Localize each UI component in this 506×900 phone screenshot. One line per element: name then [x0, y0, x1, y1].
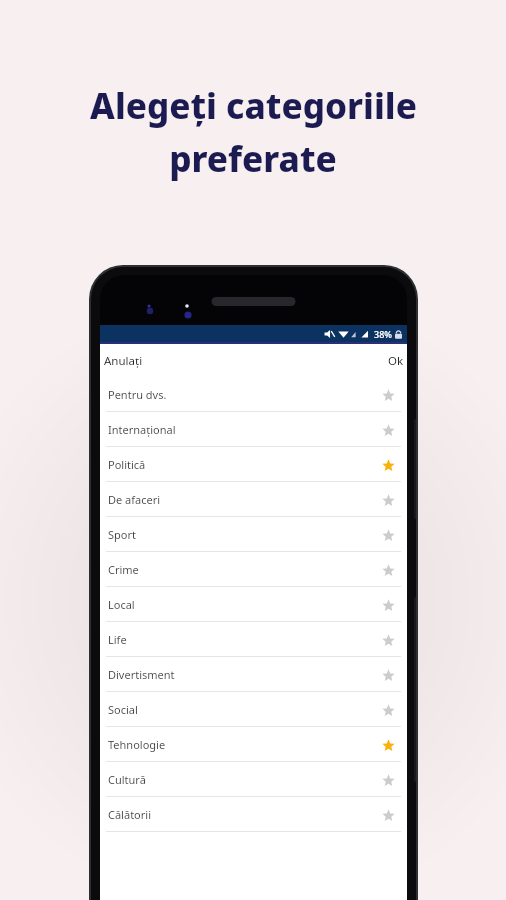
staticText: 38%: [374, 328, 392, 340]
staticText: Life: [108, 632, 377, 647]
button[interactable]: Sport: [100, 517, 407, 552]
staticText: Tehnologie: [108, 737, 377, 752]
other: Add Crime to favorites: [377, 559, 399, 581]
other: Add Sport to favorites: [377, 524, 399, 546]
other: Remove Politică from favorites: [377, 454, 399, 476]
button[interactable]: Social: [100, 692, 407, 727]
staticText: Divertisment: [108, 667, 377, 682]
other: Add Life to favorites: [377, 629, 399, 651]
other: Add Călătorii to favorites: [377, 804, 399, 826]
button[interactable]: Ok: [380, 349, 407, 373]
other: Add Internațional to favorites: [377, 419, 399, 441]
button[interactable]: De afaceri: [100, 482, 407, 517]
other: Add Pentru dvs. to favorites: [377, 384, 399, 406]
staticText: Internațional: [108, 422, 377, 437]
other: Add Cultură to favorites: [377, 769, 399, 791]
staticText: Social: [108, 702, 377, 717]
button[interactable]: Life: [100, 622, 407, 657]
button[interactable]: Internațional: [100, 412, 407, 447]
button[interactable]: Crime: [100, 552, 407, 587]
button[interactable]: Divertisment: [100, 657, 407, 692]
staticText: Sport: [108, 527, 377, 542]
button[interactable]: Cultură: [100, 762, 407, 797]
button[interactable]: Local: [100, 587, 407, 622]
other: Add Divertisment to favorites: [377, 664, 399, 686]
staticText: Pentru dvs.: [108, 387, 377, 402]
staticText: Politică: [108, 457, 377, 472]
button[interactable]: Pentru dvs.: [100, 377, 407, 412]
button[interactable]: Călătorii: [100, 797, 407, 832]
staticText: Ok: [388, 353, 404, 369]
other: Add De afaceri to favorites: [377, 489, 399, 511]
staticText: Anulați: [104, 353, 143, 369]
other: Remove Tehnologie from favorites: [377, 734, 399, 756]
staticText: De afaceri: [108, 492, 377, 507]
button[interactable]: Tehnologie: [100, 727, 407, 762]
other: Add Social to favorites: [377, 699, 399, 721]
other: Add Local to favorites: [377, 594, 399, 616]
staticText: Alegeți categoriile: [90, 82, 417, 130]
staticText: Călătorii: [108, 807, 377, 822]
staticText: Crime: [108, 562, 377, 577]
staticText: preferate: [169, 135, 337, 183]
button[interactable]: Politică: [100, 447, 407, 482]
staticText: Local: [108, 597, 377, 612]
staticText: Cultură: [108, 772, 377, 787]
button[interactable]: Anulați: [100, 349, 151, 373]
